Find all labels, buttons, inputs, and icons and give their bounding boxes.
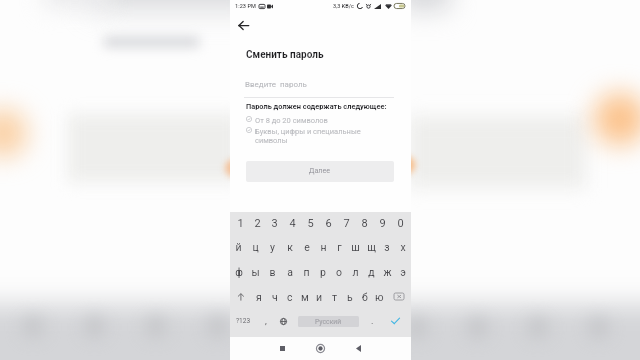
button[interactable]: ?123 (230, 309, 256, 333)
staticText: От 8 до 20 символов (255, 116, 328, 125)
staticText: 5 (307, 217, 314, 230)
button[interactable]: э (395, 259, 411, 284)
staticText: ц (252, 241, 259, 253)
staticText: Русский (315, 318, 342, 326)
button[interactable]: в (264, 259, 281, 284)
button[interactable]: 0 (391, 212, 409, 235)
button[interactable]: щ (363, 235, 379, 259)
staticText: к (287, 241, 293, 253)
button[interactable]: г (331, 235, 347, 259)
button[interactable]: Back (347, 337, 370, 360)
button[interactable]: ш (347, 235, 363, 259)
button[interactable]: Русский (298, 316, 359, 327)
button[interactable]: р (315, 259, 331, 284)
staticText: б (362, 291, 368, 303)
staticText: . (371, 316, 374, 327)
staticText: 6 (325, 217, 332, 230)
staticText: 1 (237, 217, 244, 230)
staticText: 2 (254, 217, 261, 230)
staticText: Далее (309, 166, 331, 174)
staticText: н (320, 241, 327, 253)
staticText: р (320, 266, 326, 278)
button[interactable]: ч (267, 284, 282, 309)
staticText: т (332, 291, 338, 303)
button[interactable]: ж (379, 259, 395, 284)
button[interactable]: х (395, 235, 411, 259)
button[interactable]: л (347, 259, 363, 284)
staticText: Пароль должен содержать следующее: (246, 102, 387, 111)
button[interactable]: з (379, 235, 395, 259)
button[interactable]: ф (230, 259, 247, 284)
staticText: ?123 (236, 317, 251, 325)
button[interactable]: 7 (337, 212, 355, 235)
button[interactable]: и (312, 284, 327, 309)
staticText: 4 (289, 217, 296, 230)
button[interactable]: 9 (373, 212, 391, 235)
staticText: ф (235, 266, 243, 278)
button[interactable]: п (298, 259, 315, 284)
button[interactable]: е (298, 235, 315, 259)
button[interactable]: б (357, 284, 372, 309)
staticText: г (337, 241, 342, 253)
staticText: щ (367, 241, 376, 253)
staticText: м (301, 291, 309, 303)
button[interactable]: ь (342, 284, 357, 309)
button[interactable]: Change keyboard language (275, 309, 292, 333)
staticText: 7 (343, 217, 350, 230)
button[interactable]: 6 (319, 212, 337, 235)
button[interactable]: й (230, 235, 247, 259)
button[interactable]: Home (309, 337, 332, 360)
staticText: а (287, 266, 293, 278)
staticText: 8 (361, 217, 368, 230)
button[interactable]: 4 (283, 212, 301, 235)
staticText: и (316, 291, 323, 303)
button[interactable]: Recent apps (271, 337, 294, 360)
button[interactable]: д (363, 259, 379, 284)
staticText: х (400, 241, 406, 253)
button[interactable]: 3 (266, 212, 283, 235)
button[interactable]: н (315, 235, 331, 259)
staticText: Введите пароль (245, 80, 307, 89)
button[interactable]: о (331, 259, 347, 284)
staticText: Сменить пароль (246, 49, 324, 61)
staticText: з (384, 241, 390, 253)
button[interactable]: Enter (379, 309, 411, 333)
staticText: 9 (379, 217, 386, 230)
staticText: ж (383, 266, 392, 278)
staticText: 0 (397, 217, 404, 230)
button[interactable]: т (327, 284, 342, 309)
staticText: 3 (271, 217, 278, 230)
button[interactable]: ю (372, 284, 387, 309)
staticText: д (368, 266, 375, 278)
button[interactable]: Shift (230, 284, 251, 309)
staticText: п (303, 266, 310, 278)
button[interactable]: 5 (301, 212, 319, 235)
staticText: й (235, 241, 242, 253)
button[interactable]: Back (232, 14, 254, 36)
button[interactable]: 1 (232, 212, 249, 235)
staticText: , (265, 316, 267, 327)
button[interactable]: а (281, 259, 298, 284)
button[interactable]: 2 (249, 212, 266, 235)
button[interactable]: ы (247, 259, 264, 284)
staticText: ь (347, 291, 353, 303)
staticText: ы (251, 266, 260, 278)
button[interactable]: Backspace (387, 284, 411, 309)
button[interactable]: Далее (246, 161, 394, 182)
staticText: э (400, 266, 406, 278)
button[interactable]: с (282, 284, 297, 309)
button[interactable]: 8 (355, 212, 373, 235)
button[interactable]: м (297, 284, 312, 309)
button[interactable]: к (281, 235, 298, 259)
staticText: я (256, 291, 262, 303)
staticText: 3,3 KB/c (333, 3, 354, 9)
button[interactable]: у (264, 235, 281, 259)
staticText: 1:23 PM (235, 3, 256, 10)
button[interactable]: ц (247, 235, 264, 259)
button[interactable]: . (365, 309, 379, 333)
staticText: ю (375, 291, 384, 303)
button[interactable]: , (256, 309, 275, 333)
staticText: ш (351, 241, 360, 253)
button[interactable]: я (251, 284, 267, 309)
staticText: ч (272, 291, 278, 303)
